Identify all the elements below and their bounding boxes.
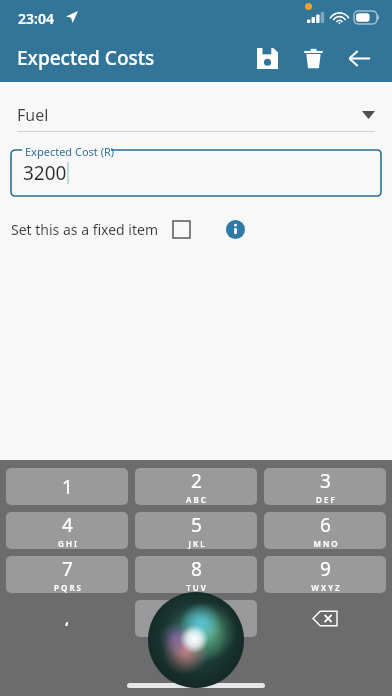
button[interactable]: 3: [264, 468, 386, 505]
staticText: T U V: [186, 582, 206, 593]
button[interactable]: Delete: [290, 35, 336, 81]
staticText: 23:04: [18, 9, 54, 28]
staticText: Set this as a fixed item: [11, 220, 158, 239]
button[interactable]: Information: [220, 214, 250, 244]
staticText: Expected Cost (R): [25, 144, 115, 159]
button[interactable]: 8: [135, 556, 257, 593]
button[interactable]: 6: [264, 512, 386, 549]
button[interactable]: 2: [135, 468, 257, 505]
staticText: Expected Costs: [17, 45, 155, 71]
staticText: 3200: [23, 160, 67, 186]
staticText: G H I: [58, 538, 77, 549]
button[interactable]: 9: [264, 556, 386, 593]
staticText: 3: [320, 468, 331, 494]
button[interactable]: Zero: [135, 600, 257, 637]
staticText: 7: [62, 556, 73, 582]
button[interactable]: Backspace: [264, 600, 386, 637]
button[interactable]: Fuel: [17, 98, 375, 132]
staticText: 2: [191, 468, 202, 494]
staticText: D E F: [316, 494, 335, 505]
staticText: A B C: [186, 494, 206, 505]
staticText: P Q R S: [54, 582, 81, 593]
staticText: J K L: [188, 538, 205, 549]
staticText: M N O: [313, 538, 338, 549]
button[interactable]: Set this as a fixed item: [11, 220, 190, 239]
staticText: 4: [62, 512, 73, 538]
button[interactable]: 4: [6, 512, 128, 549]
staticText: W X Y Z: [311, 582, 340, 593]
staticText: Fuel: [17, 104, 49, 126]
button[interactable]: Save: [244, 35, 290, 81]
staticText: 5: [191, 512, 202, 538]
button[interactable]: 5: [135, 512, 257, 549]
staticText: ,: [65, 609, 69, 628]
button[interactable]: 1: [6, 468, 128, 505]
staticText: 1: [62, 474, 73, 500]
button[interactable]: 7: [6, 556, 128, 593]
button[interactable]: Back: [336, 35, 382, 81]
button[interactable]: Comma: [6, 600, 128, 637]
staticText: 6: [320, 512, 331, 538]
staticText: 9: [320, 556, 331, 582]
staticText: 8: [191, 556, 202, 582]
